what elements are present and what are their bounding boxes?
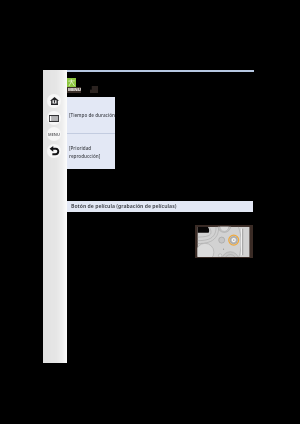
other: Camera illustration [195, 225, 253, 258]
button[interactable]: Home [47, 94, 61, 108]
staticText: MENU [48, 132, 60, 137]
other: Chapter [66, 78, 76, 87]
staticText: [Prioridad reproducción] [69, 145, 101, 159]
button[interactable]: Contents [47, 111, 61, 125]
button[interactable]: Menu [47, 127, 61, 141]
staticText: Botón de película (grabación de película… [71, 203, 177, 210]
button[interactable]: Botón de película (grabación de película… [64, 201, 253, 212]
staticText: [Tiempo de duración] [69, 112, 115, 118]
button[interactable]: Back [47, 144, 61, 158]
staticText: MENU [68, 87, 81, 93]
